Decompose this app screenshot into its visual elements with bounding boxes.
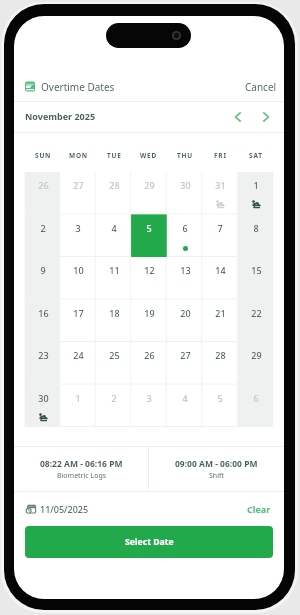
button[interactable]: 2 (96, 385, 132, 428)
staticText: 29 (144, 179, 155, 191)
staticText: 6 (182, 222, 188, 234)
staticText: 11/05/2025 (40, 503, 89, 515)
button[interactable]: 21 (202, 300, 238, 343)
button[interactable]: 4 (96, 215, 132, 258)
button[interactable]: 3 (60, 215, 96, 258)
staticText: 30 (38, 392, 49, 404)
button[interactable]: 1 (238, 172, 274, 215)
button[interactable]: 08:22 AM - 06:16 PM (14, 447, 148, 491)
button[interactable]: 2 (25, 215, 61, 258)
staticText: 3 (75, 222, 81, 234)
button[interactable]: 7 (202, 215, 238, 258)
button[interactable]: 9 (25, 257, 61, 300)
button[interactable]: 26 (131, 342, 167, 385)
staticText: 09:00 AM - 06:00 PM (175, 458, 258, 470)
button[interactable]: 18 (96, 300, 132, 343)
button[interactable]: 12 (131, 257, 167, 300)
staticText: November 2025 (25, 110, 96, 122)
button[interactable]: 16 (25, 300, 61, 343)
button[interactable]: 8 (238, 215, 274, 258)
staticText: 12 (144, 264, 155, 276)
staticText: Cancel (245, 80, 277, 94)
staticText: Biometric Logs (57, 471, 107, 481)
staticText: SAT (249, 151, 263, 160)
button[interactable]: 28 (96, 172, 132, 215)
button[interactable]: 30 (167, 172, 203, 215)
staticText: 15 (251, 264, 262, 276)
button[interactable]: 5 (202, 385, 238, 428)
button[interactable]: 24 (60, 342, 96, 385)
button[interactable]: 6 (238, 385, 274, 428)
staticText: 7 (217, 222, 223, 234)
staticText: 2 (40, 222, 46, 234)
button[interactable]: Previous month (230, 109, 246, 125)
staticText: Select Date (125, 536, 174, 548)
button[interactable]: 26 (25, 172, 61, 215)
button[interactable]: 27 (60, 172, 96, 215)
staticText: 08:22 AM - 06:16 PM (40, 458, 123, 470)
staticText: FRI (214, 151, 227, 160)
button[interactable]: 5 (131, 215, 167, 258)
staticText: WED (140, 151, 158, 160)
staticText: 17 (73, 307, 84, 319)
staticText: 4 (182, 392, 188, 404)
staticText: Clear (247, 503, 271, 515)
button[interactable]: 23 (25, 342, 61, 385)
staticText: 28 (109, 179, 120, 191)
button[interactable]: 25 (96, 342, 132, 385)
button[interactable]: 10 (60, 257, 96, 300)
button[interactable]: Select Date (25, 526, 273, 558)
button[interactable]: Clear (247, 502, 271, 514)
staticText: 22 (251, 307, 262, 319)
button[interactable]: 6 (167, 215, 203, 258)
button[interactable]: Next month (258, 109, 274, 125)
staticText: 1 (253, 179, 259, 191)
button[interactable]: 4 (167, 385, 203, 428)
staticText: SUN (35, 151, 52, 160)
button[interactable]: 29 (131, 172, 167, 215)
staticText: 5 (217, 392, 223, 404)
button[interactable]: 27 (167, 342, 203, 385)
staticText: 30 (180, 179, 191, 191)
button[interactable]: 20 (167, 300, 203, 343)
button[interactable]: 1 (60, 385, 96, 428)
staticText: 25 (109, 349, 120, 361)
staticText: Overtime Dates (41, 80, 115, 94)
staticText: 27 (180, 349, 191, 361)
staticText: 26 (38, 179, 49, 191)
button[interactable]: 15 (238, 257, 274, 300)
button[interactable]: 30 (25, 385, 61, 428)
staticText: 24 (73, 349, 84, 361)
button[interactable]: 29 (238, 342, 274, 385)
staticText: 3 (146, 392, 152, 404)
button[interactable]: 28 (202, 342, 238, 385)
staticText: 16 (38, 307, 49, 319)
button[interactable]: 17 (60, 300, 96, 343)
button[interactable]: 3 (131, 385, 167, 428)
staticText: 29 (251, 349, 262, 361)
staticText: 8 (253, 222, 259, 234)
staticText: 6 (253, 392, 259, 404)
button[interactable]: 22 (238, 300, 274, 343)
staticText: 2 (111, 392, 117, 404)
staticText: 18 (109, 307, 120, 319)
button[interactable]: 11 (96, 257, 132, 300)
staticText: Shift (209, 471, 224, 481)
button[interactable]: 14 (202, 257, 238, 300)
staticText: MON (69, 151, 88, 160)
button[interactable]: 31 (202, 172, 238, 215)
button[interactable]: 09:00 AM - 06:00 PM (149, 447, 284, 491)
staticText: 10 (73, 264, 84, 276)
button[interactable]: 19 (131, 300, 167, 343)
staticText: 23 (38, 349, 49, 361)
staticText: 5 (146, 222, 152, 234)
staticText: 26 (144, 349, 155, 361)
button[interactable]: Cancel (244, 78, 278, 92)
staticText: 28 (215, 349, 226, 361)
staticText: 14 (215, 264, 226, 276)
staticText: 11 (109, 264, 120, 276)
staticText: 19 (144, 307, 155, 319)
button[interactable]: 13 (167, 257, 203, 300)
staticText: 1 (75, 392, 81, 404)
staticText: 20 (180, 307, 191, 319)
